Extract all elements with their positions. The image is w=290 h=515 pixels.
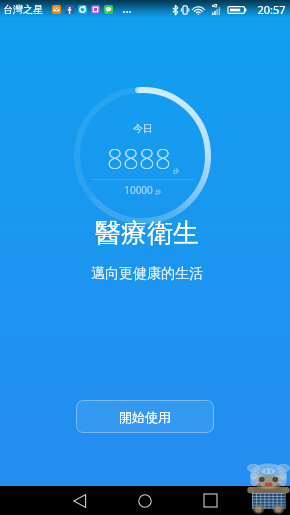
button[interactable]: Home xyxy=(123,486,167,515)
staticText: 醫療衛生 xyxy=(95,217,199,250)
staticText: 今日 xyxy=(133,122,153,135)
staticText: 10000 xyxy=(124,183,153,197)
button[interactable]: Back xyxy=(58,486,102,515)
staticText: 步 xyxy=(155,188,161,196)
staticText: 20:57 xyxy=(257,2,286,17)
staticText: 開始使用 xyxy=(119,409,171,425)
staticText: 步 xyxy=(173,167,179,175)
staticText: 8888 xyxy=(107,139,171,177)
button[interactable]: 開始使用 xyxy=(76,400,214,433)
staticText: 邁向更健康的生活 xyxy=(91,265,203,283)
button[interactable]: Recent apps xyxy=(188,486,232,515)
staticText: 台灣之星 xyxy=(3,3,43,16)
